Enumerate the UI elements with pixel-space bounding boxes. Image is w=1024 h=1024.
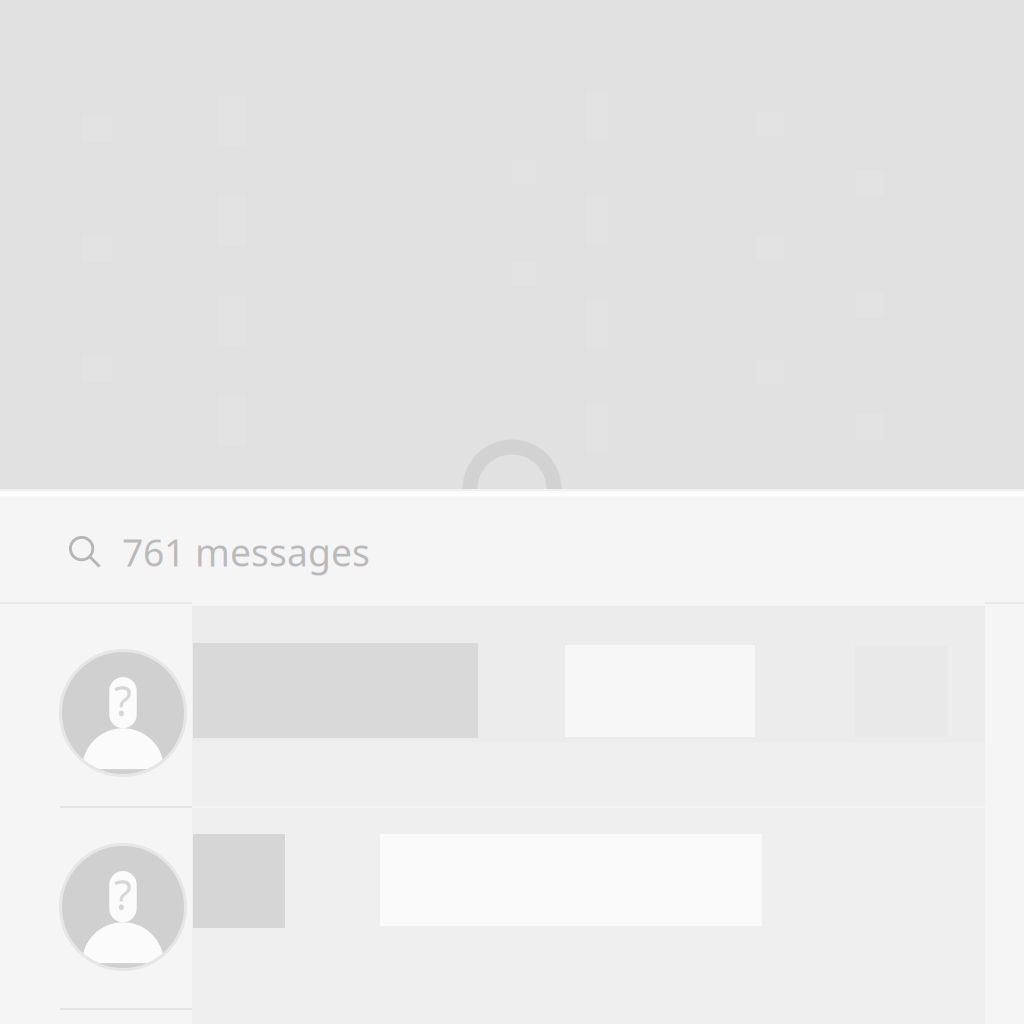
- staticText: ?: [114, 867, 132, 922]
- button[interactable]: Conversation 2: [0, 808, 1024, 1024]
- button[interactable]: 761 messages: [68, 496, 1024, 608]
- staticText: 761 messages: [122, 527, 370, 577]
- button[interactable]: Conversation 1: [0, 606, 1024, 806]
- staticText: ?: [114, 673, 132, 728]
